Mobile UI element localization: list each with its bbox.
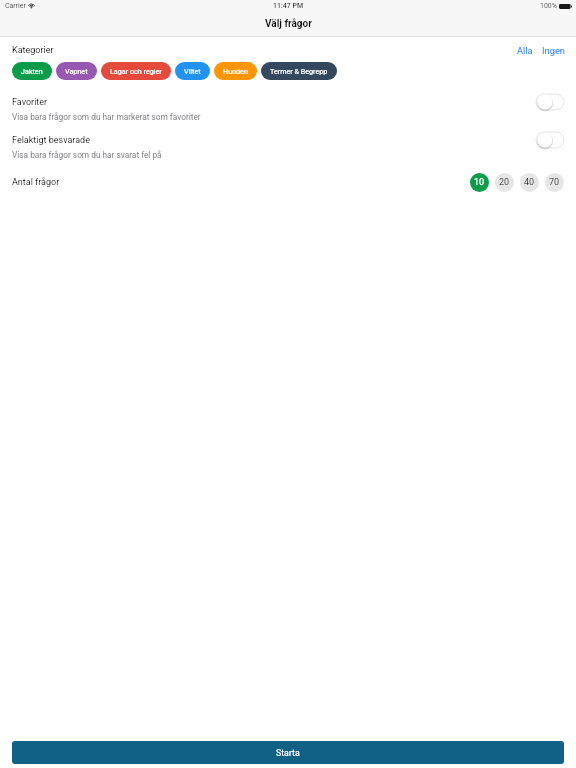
staticText: 10 xyxy=(474,177,485,188)
staticText: 11:47 PM xyxy=(273,2,304,10)
button[interactable]: Vapnet xyxy=(56,62,97,80)
staticText: Lagar och regler xyxy=(110,67,162,75)
button[interactable]: 70 xyxy=(545,173,564,192)
button[interactable]: Alla xyxy=(517,45,533,56)
staticText: Viltet xyxy=(184,67,201,75)
staticText: Kategorier xyxy=(12,45,54,56)
button[interactable]: Favoriter på/av xyxy=(536,94,564,110)
button[interactable]: Felaktigt besvarade xyxy=(0,135,576,161)
staticText: Carrier xyxy=(5,2,26,10)
staticText: Hunden xyxy=(223,67,248,75)
staticText: Vapnet xyxy=(65,67,88,75)
staticText: Visa bara frågor som du har markerat som… xyxy=(12,112,201,122)
staticText: Visa bara frågor som du har svarat fel p… xyxy=(12,150,162,160)
button[interactable]: Lagar och regler xyxy=(101,62,171,80)
button[interactable]: Jakten xyxy=(12,62,52,80)
staticText: Favoriter xyxy=(12,97,48,108)
staticText: 70 xyxy=(549,177,560,188)
staticText: Antal frågor xyxy=(12,177,60,188)
staticText: Starta xyxy=(276,748,300,758)
staticText: 100% xyxy=(540,2,557,10)
button[interactable]: Termer & Begrepp xyxy=(261,62,337,80)
button[interactable]: 40 xyxy=(520,173,539,192)
staticText: Felaktigt besvarade xyxy=(12,135,90,146)
button[interactable]: Felaktigt besvarade på/av xyxy=(536,132,564,148)
button[interactable]: Starta xyxy=(12,741,564,764)
staticText: Välj frågor xyxy=(265,18,312,30)
staticText: Termer & Begrepp xyxy=(270,67,328,75)
other: Wi-Fi xyxy=(28,3,35,8)
button[interactable]: Favoriter xyxy=(0,97,576,123)
button[interactable]: Viltet xyxy=(175,62,210,80)
staticText: 40 xyxy=(524,177,535,188)
button[interactable]: Hunden xyxy=(214,62,257,80)
staticText: Jakten xyxy=(21,67,43,75)
button[interactable]: 20 xyxy=(495,173,514,192)
button[interactable]: 10 xyxy=(470,173,489,192)
button[interactable]: Ingen xyxy=(542,45,565,56)
staticText: 20 xyxy=(499,177,510,188)
